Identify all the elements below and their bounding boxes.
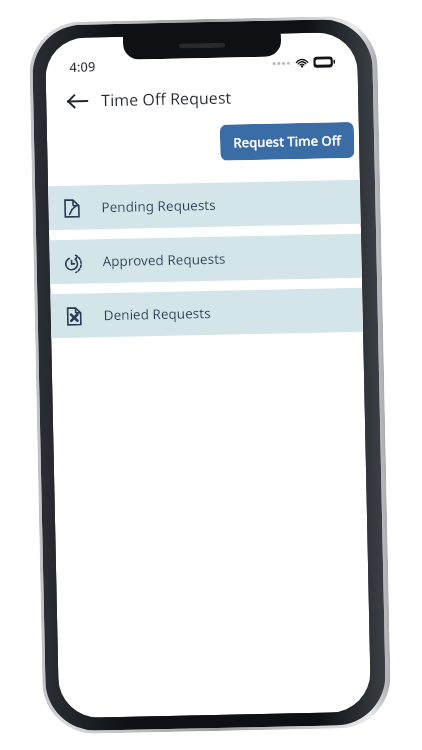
staticText: Denied Requests xyxy=(103,304,211,324)
button[interactable]: Back xyxy=(60,83,95,118)
staticText: Time Off Request xyxy=(101,86,232,111)
staticText: 4:09 xyxy=(69,57,96,76)
button[interactable]: Pending Requests xyxy=(48,180,361,230)
button[interactable]: Request Time Off xyxy=(220,122,354,161)
staticText: Request Time Off xyxy=(233,131,341,151)
staticText: Pending Requests xyxy=(101,196,217,216)
staticText: Approved Requests xyxy=(102,250,226,270)
button[interactable]: Approved Requests xyxy=(49,234,362,284)
button[interactable]: Denied Requests xyxy=(50,288,363,338)
